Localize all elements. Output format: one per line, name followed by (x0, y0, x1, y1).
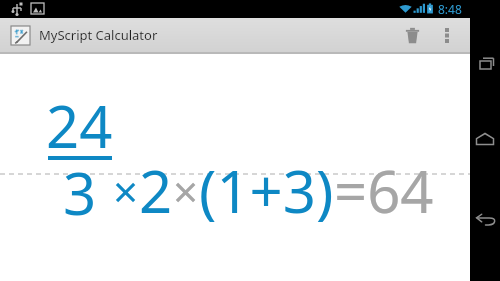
button[interactable]: Back (470, 207, 500, 231)
staticText: =64 (334, 151, 434, 230)
staticText: (1+3) (199, 151, 334, 230)
button[interactable]: Home (470, 127, 500, 151)
staticText: 24 (46, 86, 113, 165)
button[interactable]: 24 (0, 54, 470, 281)
staticText: 8:48 (438, 1, 462, 17)
button[interactable]: More options (432, 18, 462, 52)
button[interactable]: Recents (470, 52, 500, 76)
staticText: 2 (139, 151, 173, 230)
button[interactable]: Delete (392, 18, 432, 52)
staticText: 3 (63, 153, 97, 232)
staticText: × (113, 161, 139, 221)
staticText: × (173, 161, 199, 221)
staticText: MyScript Calculator (39, 26, 158, 44)
